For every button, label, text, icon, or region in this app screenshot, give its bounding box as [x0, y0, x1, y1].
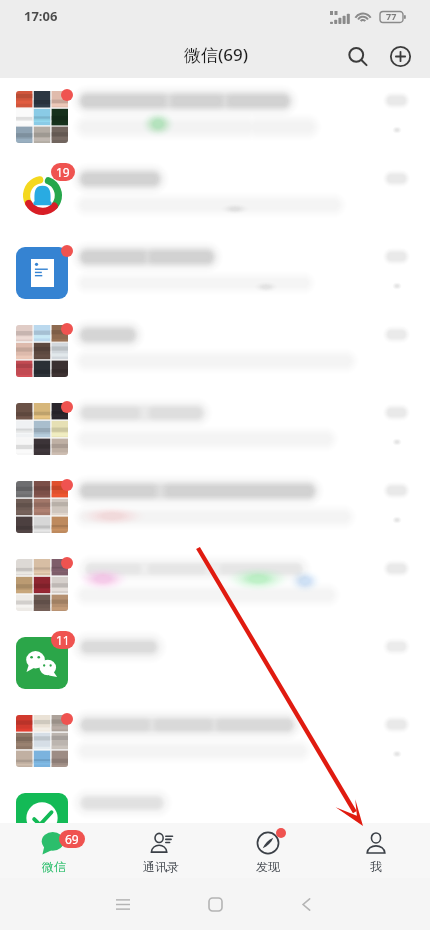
button[interactable]: Home [195, 884, 235, 924]
button[interactable] [0, 702, 430, 780]
button[interactable]: Add [381, 37, 419, 75]
button[interactable] [0, 546, 430, 624]
button[interactable]: Search [338, 37, 376, 75]
button[interactable] [0, 312, 430, 390]
button[interactable]: Recents [103, 884, 143, 924]
staticText: 11 [56, 632, 70, 648]
button[interactable]: 69 [0, 823, 107, 874]
button[interactable]: 11 [0, 624, 430, 702]
staticText: 微信 [42, 859, 66, 874]
staticText: 发现 [256, 859, 280, 874]
staticText: 通讯录 [143, 859, 179, 874]
staticText: 77 [386, 10, 397, 22]
staticText: 微信(69) [184, 43, 249, 66]
button[interactable]: 我 [322, 823, 430, 874]
button[interactable] [0, 78, 430, 156]
staticText: 19 [56, 164, 70, 180]
button[interactable] [0, 468, 430, 546]
button[interactable] [0, 780, 430, 823]
staticText: 我 [370, 859, 382, 874]
button[interactable]: 通讯录 [107, 823, 214, 874]
button[interactable]: 19 [0, 156, 430, 234]
button[interactable]: Back [286, 884, 326, 924]
button[interactable] [0, 390, 430, 468]
button[interactable] [0, 234, 430, 312]
staticText: 17:06 [24, 7, 58, 25]
staticText: 69 [65, 831, 79, 847]
button[interactable]: 发现 [214, 823, 322, 874]
